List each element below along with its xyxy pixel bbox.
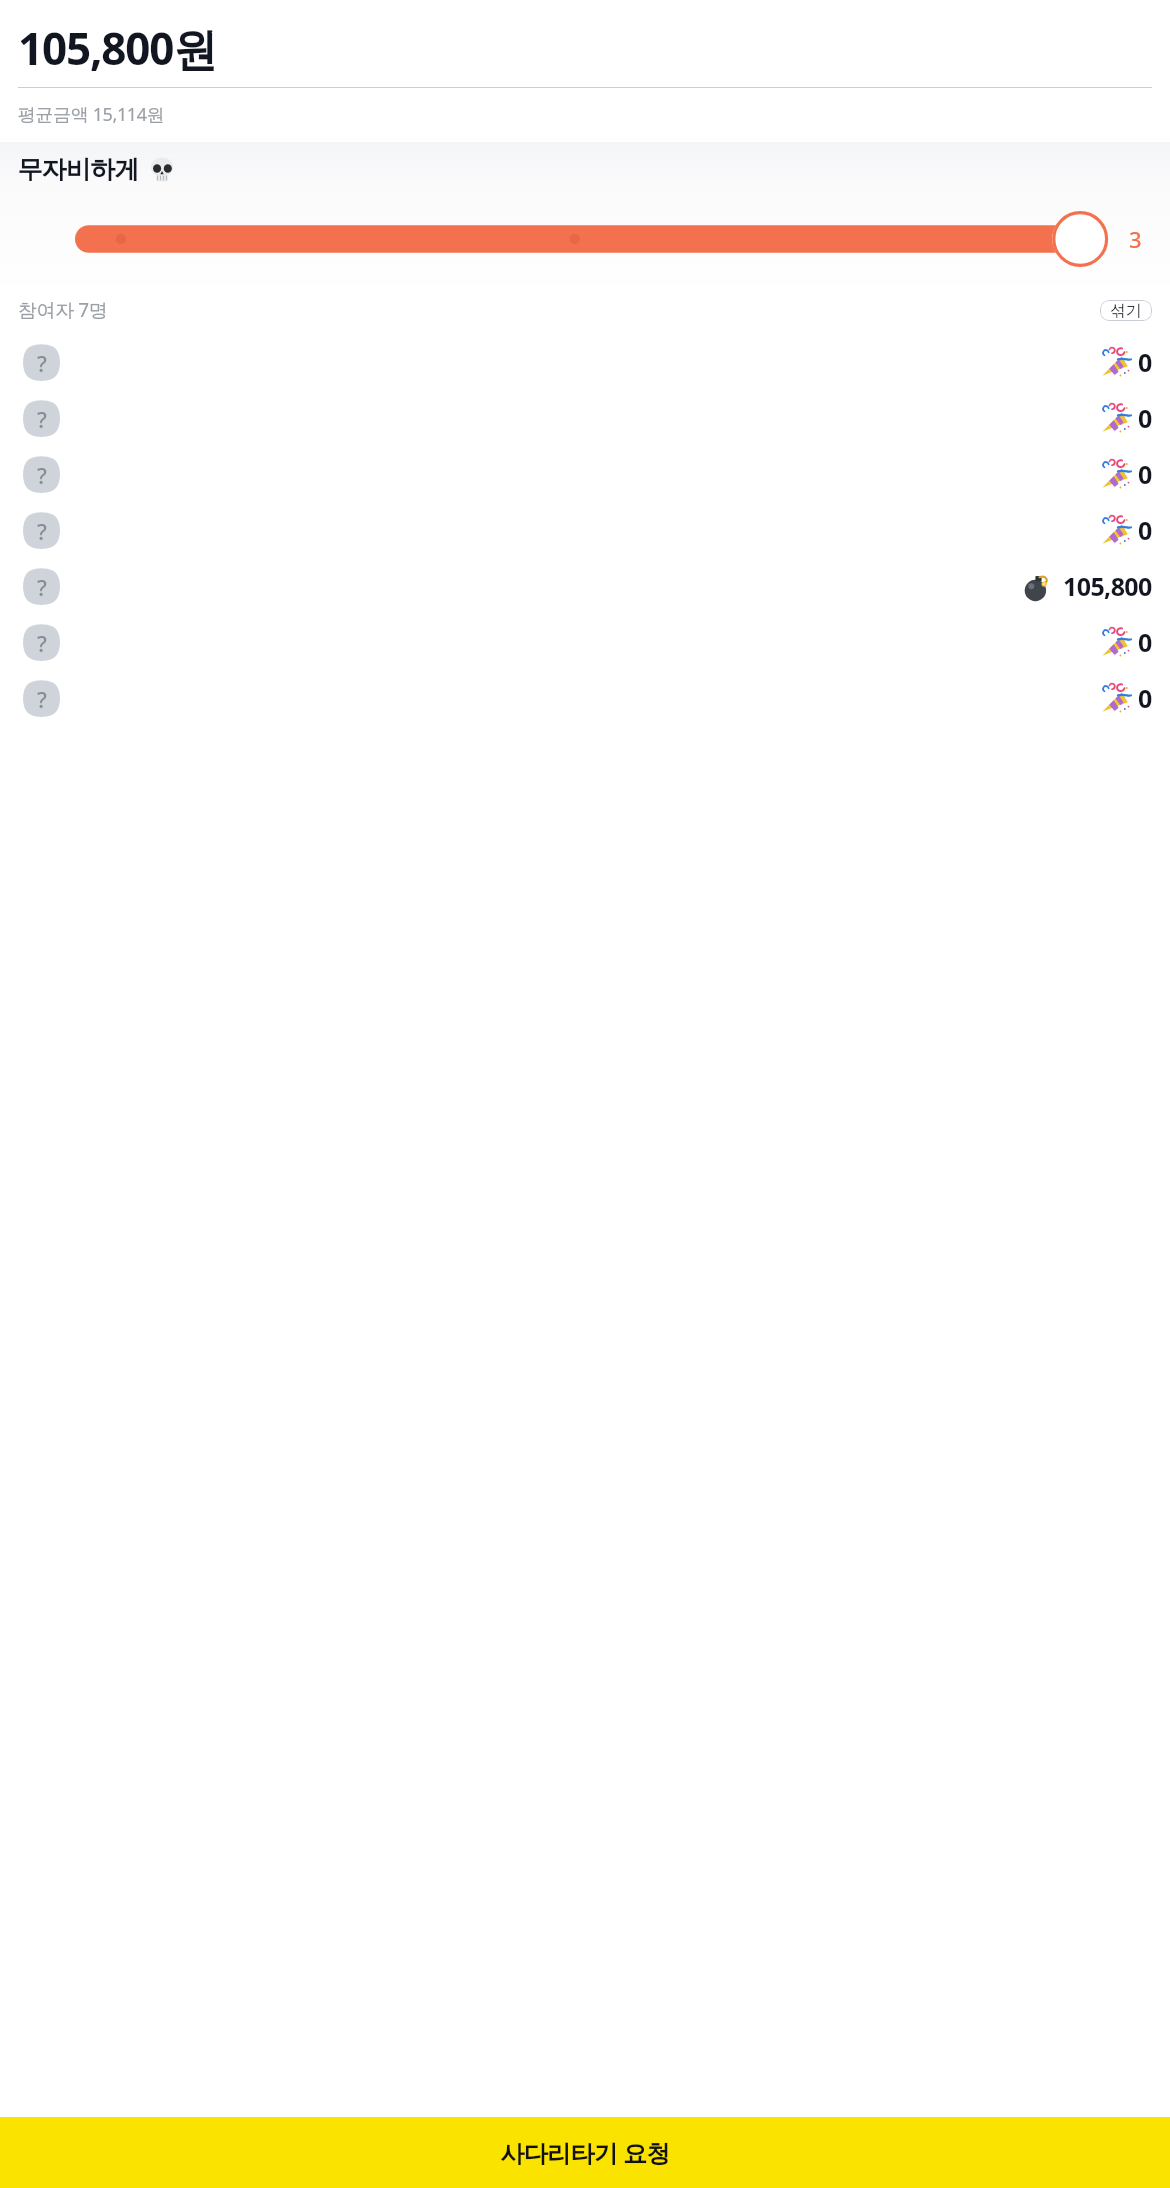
button[interactable]: ? (0, 614, 1170, 670)
staticText: 섞기 (1110, 301, 1142, 321)
button[interactable]: 사다리타기 요청 (0, 2117, 1170, 2188)
button[interactable]: 3 (0, 211, 1170, 267)
staticText: 105,800 (1063, 569, 1152, 603)
staticText: 0 (1138, 625, 1152, 659)
staticText: ? (37, 572, 47, 602)
staticText: ? (37, 460, 47, 490)
button[interactable]: ? (0, 334, 1170, 390)
button[interactable]: 섞기 (1100, 300, 1152, 321)
staticText: 105,800원 (18, 18, 216, 78)
button[interactable]: ? (0, 446, 1170, 502)
staticText: ? (37, 404, 47, 434)
button[interactable]: ? (0, 558, 1170, 614)
staticText: 0 (1138, 513, 1152, 547)
staticText: ? (37, 348, 47, 378)
staticText: ? (37, 628, 47, 658)
staticText: 평균금액 15,114원 (18, 102, 165, 127)
staticText: 0 (1138, 345, 1152, 379)
staticText: 3 (1129, 224, 1142, 254)
staticText: ? (37, 516, 47, 546)
staticText: 무자비하게 (18, 154, 139, 185)
staticText: 0 (1138, 401, 1152, 435)
button[interactable]: ? (0, 670, 1170, 726)
button[interactable]: ? (0, 390, 1170, 446)
staticText: ? (37, 684, 47, 714)
button[interactable]: ? (0, 502, 1170, 558)
staticText: 참여자 7명 (18, 297, 108, 323)
staticText: 0 (1138, 681, 1152, 715)
staticText: 사다리타기 요청 (500, 2136, 670, 2169)
staticText: 0 (1138, 457, 1152, 491)
